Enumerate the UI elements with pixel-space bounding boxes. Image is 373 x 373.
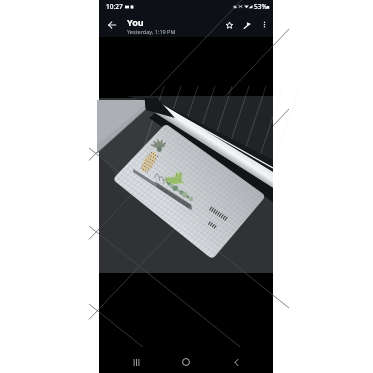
button[interactable]: Home bbox=[178, 354, 194, 370]
staticText: 53% bbox=[254, 2, 267, 11]
button[interactable]: More options bbox=[256, 16, 272, 32]
button[interactable]: Back bbox=[228, 354, 244, 370]
staticText: Yesterday, 1:19 PM bbox=[127, 28, 176, 35]
staticText: You bbox=[127, 16, 144, 28]
button[interactable]: Navigate up bbox=[104, 17, 120, 33]
button[interactable]: Recent apps bbox=[128, 354, 144, 370]
button[interactable]: Add to favourites bbox=[220, 16, 238, 34]
button[interactable]: Share bbox=[238, 16, 256, 34]
staticText: 10:27 bbox=[106, 2, 123, 11]
